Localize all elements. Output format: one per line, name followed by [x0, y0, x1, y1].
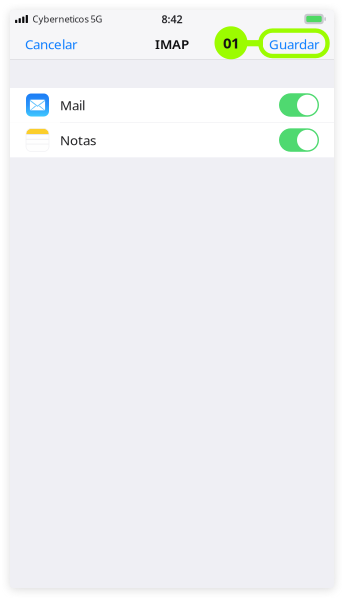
staticText: Notas	[60, 131, 96, 149]
button[interactable]: Cancelar	[10, 28, 86, 60]
staticText: Guardar	[269, 35, 320, 53]
button[interactable]: Guardar	[261, 28, 334, 60]
button[interactable]: Notas	[10, 123, 334, 157]
staticText: Cancelar	[25, 35, 78, 53]
staticText: Mail	[60, 96, 85, 114]
staticText: IMAP	[155, 35, 189, 53]
staticText: 01	[223, 33, 239, 53]
button[interactable]: Mail	[10, 88, 334, 122]
staticText: 8:42	[161, 12, 182, 26]
staticText: Cyberneticos 5G	[32, 13, 102, 25]
